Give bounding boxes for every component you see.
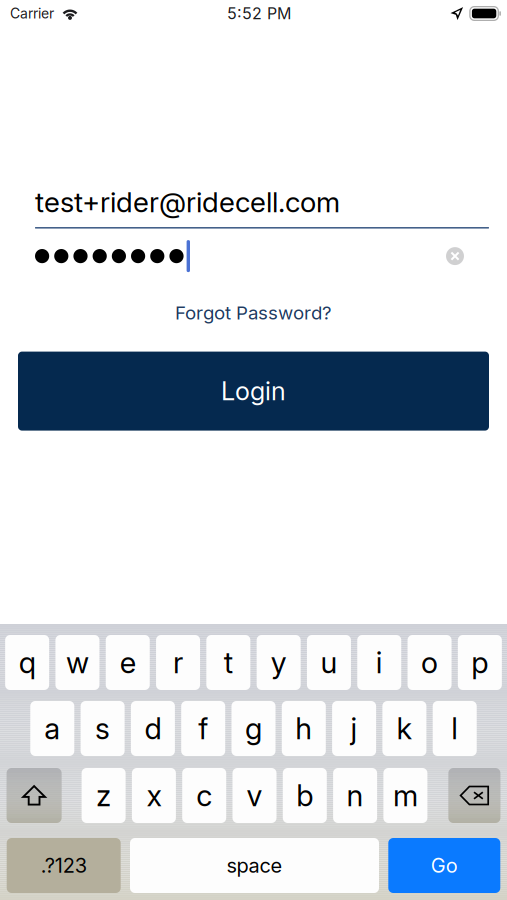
staticText: b bbox=[296, 778, 313, 813]
button[interactable]: Delete bbox=[448, 768, 500, 823]
staticText: w bbox=[66, 645, 89, 680]
staticText: space bbox=[226, 853, 282, 878]
staticText: .?123 bbox=[41, 853, 87, 878]
button[interactable]: p bbox=[458, 635, 502, 690]
staticText: n bbox=[347, 778, 364, 813]
button[interactable]: x bbox=[132, 768, 176, 823]
button[interactable]: Go bbox=[388, 838, 500, 893]
button[interactable]: Login bbox=[18, 352, 489, 431]
staticText: f bbox=[198, 711, 208, 746]
button[interactable]: w bbox=[55, 635, 99, 690]
staticText: j bbox=[351, 711, 358, 746]
staticText: test+rider@ridecell.com bbox=[35, 185, 340, 219]
button[interactable]: Clear text bbox=[439, 240, 471, 272]
staticText: Forgot Password? bbox=[175, 301, 332, 324]
button[interactable]: o bbox=[408, 635, 452, 690]
staticText: v bbox=[246, 778, 262, 813]
staticText: a bbox=[44, 711, 60, 746]
button[interactable]: n bbox=[333, 768, 377, 823]
staticText: s bbox=[95, 711, 110, 746]
button[interactable]: a bbox=[30, 701, 74, 756]
button[interactable]: k bbox=[382, 701, 426, 756]
staticText: m bbox=[393, 778, 418, 813]
staticText: p bbox=[471, 645, 488, 680]
staticText: t bbox=[224, 645, 233, 680]
button[interactable]: Forgot Password? bbox=[163, 299, 344, 327]
staticText: y bbox=[271, 645, 287, 680]
button[interactable]: z bbox=[82, 768, 126, 823]
staticText: g bbox=[245, 711, 262, 746]
button[interactable]: space bbox=[130, 838, 379, 893]
button[interactable]: l bbox=[433, 701, 477, 756]
staticText: c bbox=[196, 778, 212, 813]
button[interactable]: u bbox=[307, 635, 351, 690]
staticText: z bbox=[96, 778, 111, 813]
button[interactable]: b bbox=[283, 768, 327, 823]
staticText: r bbox=[173, 645, 183, 680]
button[interactable]: h bbox=[282, 701, 326, 756]
staticText: l bbox=[451, 711, 458, 746]
staticText: Go bbox=[431, 853, 458, 878]
button[interactable]: m bbox=[383, 768, 427, 823]
staticText: i bbox=[376, 645, 383, 680]
button[interactable]: c bbox=[182, 768, 226, 823]
button[interactable]: g bbox=[231, 701, 275, 756]
staticText: u bbox=[320, 645, 337, 680]
staticText: o bbox=[421, 645, 438, 680]
staticText: h bbox=[295, 711, 312, 746]
button[interactable]: f bbox=[181, 701, 225, 756]
staticText: x bbox=[146, 778, 161, 813]
button[interactable]: j bbox=[332, 701, 376, 756]
button[interactable]: e bbox=[106, 635, 150, 690]
staticText: 5:52 PM bbox=[227, 4, 291, 23]
button[interactable]: v bbox=[232, 768, 276, 823]
staticText: d bbox=[144, 711, 161, 746]
staticText: Carrier bbox=[10, 5, 54, 22]
button[interactable]: Shift bbox=[7, 768, 62, 823]
button[interactable]: .?123 bbox=[7, 838, 121, 893]
button[interactable]: d bbox=[131, 701, 175, 756]
button[interactable]: q bbox=[5, 635, 49, 690]
button[interactable]: r bbox=[156, 635, 200, 690]
button[interactable]: t bbox=[206, 635, 250, 690]
button[interactable]: i bbox=[357, 635, 401, 690]
staticText: e bbox=[120, 645, 136, 680]
button[interactable]: y bbox=[257, 635, 301, 690]
staticText: k bbox=[396, 711, 412, 746]
staticText: q bbox=[19, 645, 36, 680]
button[interactable]: s bbox=[81, 701, 125, 756]
staticText: Login bbox=[221, 376, 286, 406]
